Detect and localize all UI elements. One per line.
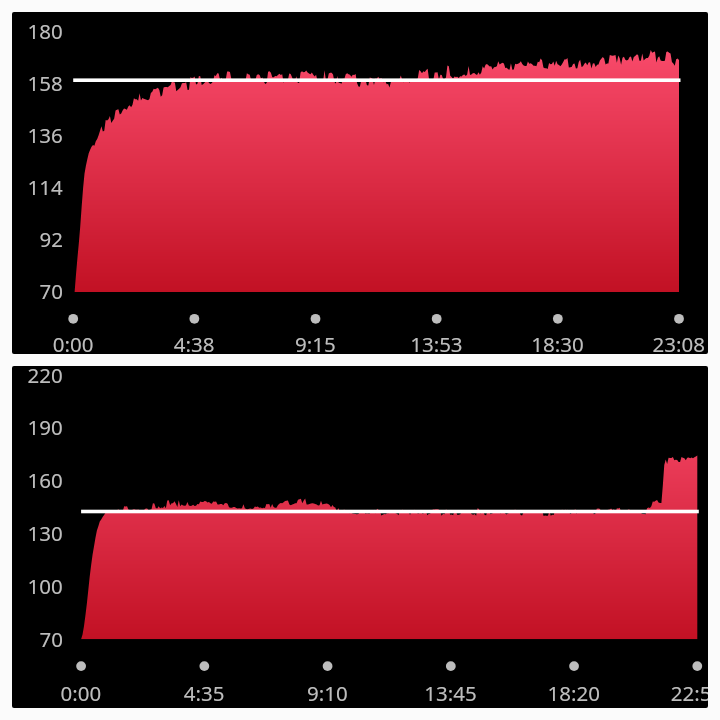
button[interactable]: Heart rate chart, 23 minute session xyxy=(12,12,708,354)
button[interactable]: Heart rate chart, 22 minute session xyxy=(12,366,708,708)
